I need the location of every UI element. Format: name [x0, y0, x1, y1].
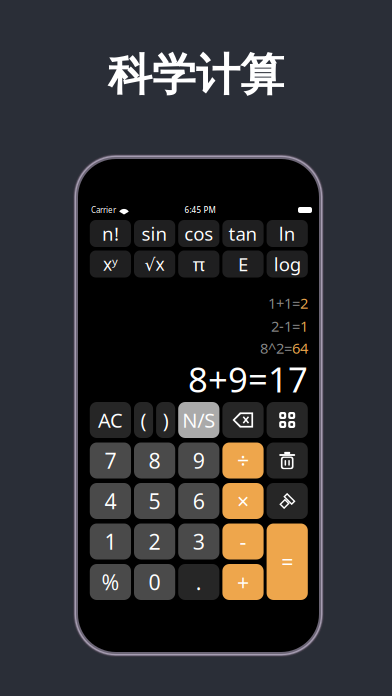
button[interactable]: n! [90, 220, 131, 247]
staticText: cos [184, 221, 213, 246]
button[interactable]: = [267, 523, 308, 600]
button[interactable]: 8 [134, 442, 175, 478]
staticText: N/S [182, 407, 215, 433]
button[interactable]: E [222, 250, 264, 277]
button[interactable]: 6 [178, 483, 219, 519]
button[interactable]: . [178, 564, 219, 600]
button[interactable]: ln [267, 220, 308, 247]
staticText: . [196, 568, 202, 596]
button[interactable]: 1 [90, 523, 131, 559]
staticText: log [274, 252, 301, 276]
staticText: 2 [300, 293, 308, 313]
staticText: tan [228, 221, 257, 246]
staticText: 64 [292, 338, 308, 358]
staticText: √x [145, 252, 165, 275]
staticText: 6 [193, 487, 205, 515]
button[interactable]: 5 [134, 483, 175, 519]
button[interactable]: Delete history [267, 442, 308, 478]
button[interactable]: N/S [178, 402, 219, 438]
button[interactable]: 7 [90, 442, 131, 478]
staticText: ) [163, 407, 169, 433]
button[interactable]: - [222, 523, 264, 559]
staticText: xʸ [103, 252, 118, 275]
staticText: 2 [149, 527, 161, 556]
staticText: = [281, 548, 293, 576]
staticText: ln [279, 221, 296, 246]
button[interactable]: + [222, 564, 264, 600]
button[interactable]: ÷ [222, 442, 264, 478]
staticText: 0 [149, 568, 161, 596]
button[interactable]: Backspace [222, 402, 264, 438]
button[interactable]: ) [156, 402, 175, 438]
staticText: Carrier [91, 205, 116, 215]
button[interactable]: ( [134, 402, 153, 438]
button[interactable]: cos [178, 220, 219, 247]
button[interactable]: π [178, 250, 219, 277]
button[interactable]: xʸ [90, 250, 131, 277]
staticText: 科学计算 [108, 48, 284, 102]
staticText: 1+1= [268, 293, 300, 313]
button[interactable]: tan [222, 220, 264, 247]
staticText: 2-1= [271, 316, 300, 336]
staticText: AC [98, 407, 123, 433]
staticText: 5 [149, 487, 161, 515]
staticText: 1 [104, 527, 116, 556]
staticText: ( [141, 407, 147, 433]
button[interactable]: sin [134, 220, 175, 247]
button[interactable]: % [90, 564, 131, 600]
button[interactable]: √x [134, 250, 175, 277]
staticText: 9 [193, 446, 205, 475]
button[interactable]: More functions [267, 402, 308, 438]
staticText: + [237, 568, 249, 596]
button[interactable]: × [222, 483, 264, 519]
staticText: 6:45 PM [184, 205, 215, 215]
button[interactable]: AC [90, 402, 131, 438]
staticText: % [101, 568, 119, 596]
staticText: sin [142, 221, 168, 246]
button[interactable]: log [267, 250, 308, 277]
staticText: 8^2= [260, 338, 292, 358]
button[interactable]: 0 [134, 564, 175, 600]
staticText: - [239, 527, 246, 556]
staticText: 8 [149, 446, 161, 475]
staticText: 8+9=17 [188, 356, 308, 402]
button[interactable]: Clear all [267, 483, 308, 519]
staticText: E [238, 252, 248, 276]
staticText: ÷ [237, 446, 249, 475]
staticText: n! [102, 221, 119, 246]
button[interactable]: 2 [134, 523, 175, 559]
staticText: × [237, 487, 249, 515]
staticText: 3 [193, 527, 205, 556]
button[interactable]: 4 [90, 483, 131, 519]
button[interactable]: 9 [178, 442, 219, 478]
staticText: π [193, 252, 205, 276]
staticText: 1 [300, 316, 308, 336]
button[interactable]: 3 [178, 523, 219, 559]
staticText: 4 [104, 487, 116, 515]
staticText: 7 [104, 446, 116, 475]
